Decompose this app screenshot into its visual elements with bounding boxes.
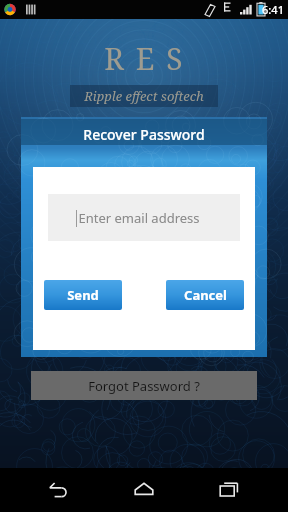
button[interactable]: Forgot Password ?: [31, 371, 257, 400]
button[interactable]: Home: [118, 468, 170, 512]
button[interactable]: Recent apps: [203, 468, 255, 512]
staticText: Forgot Password ?: [88, 377, 200, 395]
staticText: Ripple effect softech: [84, 87, 204, 105]
button[interactable]: Cancel: [166, 280, 244, 310]
staticText: Recover Password: [83, 125, 205, 144]
staticText: Enter email address: [78, 209, 200, 227]
button[interactable]: Back: [33, 468, 85, 512]
button[interactable]: Enter email address: [48, 194, 240, 241]
button[interactable]: Send: [44, 280, 122, 310]
staticText: Send: [67, 286, 99, 304]
staticText: R E S: [104, 38, 185, 79]
staticText: 6:41: [262, 2, 284, 17]
staticText: Cancel: [184, 286, 227, 304]
